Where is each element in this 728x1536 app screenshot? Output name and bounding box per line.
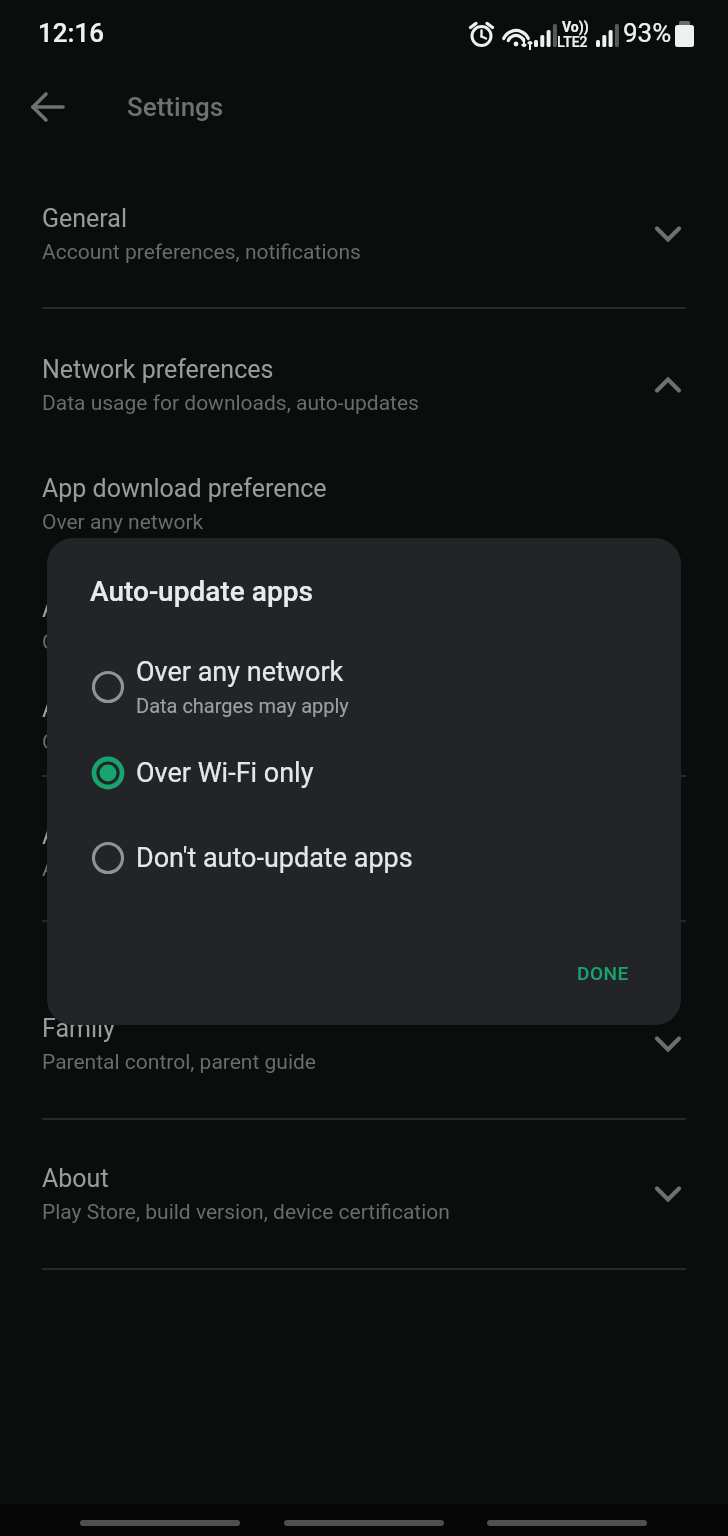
staticText: Over Wi-Fi only	[42, 630, 181, 655]
staticText: Play Store, build version, device certif…	[42, 1200, 450, 1225]
staticText: Over any network	[136, 656, 344, 688]
button[interactable]	[24, 83, 72, 131]
button[interactable]: App install optimization	[0, 795, 728, 895]
staticText: Account preferences, notifications	[42, 240, 361, 265]
button[interactable]: Auto-play videos	[0, 668, 728, 768]
staticText: Parental control, parent guide	[42, 1050, 316, 1075]
staticText: Auto-update apps	[42, 594, 239, 623]
staticText: General	[42, 204, 128, 233]
staticText: 93%	[623, 18, 672, 48]
button[interactable]: Network preferences	[0, 329, 728, 429]
button[interactable]: Auto-update apps	[0, 568, 728, 668]
staticText: Network preferences	[42, 355, 274, 384]
staticText: 12:16	[38, 18, 105, 48]
staticText: Family	[42, 1014, 115, 1043]
staticText: Over any network	[42, 510, 204, 535]
button[interactable]: Don't auto-update apps	[60, 815, 668, 901]
button[interactable]: General	[0, 178, 728, 278]
staticText: Don't auto-update apps	[136, 842, 413, 874]
staticText: App install optimization	[42, 821, 305, 850]
staticText: Allowed	[42, 857, 117, 882]
staticText: About	[42, 1164, 109, 1193]
button[interactable]: Over Wi-Fi only	[60, 730, 668, 816]
staticText: Auto-update apps	[90, 575, 313, 608]
button[interactable]: Over any network	[60, 644, 668, 730]
staticText: Vo))	[562, 19, 589, 35]
staticText: On Wi-Fi only	[42, 730, 164, 755]
staticText: Settings	[127, 92, 224, 122]
staticText: DONE	[577, 962, 629, 984]
staticText: App download preference	[42, 474, 327, 503]
staticText: Over Wi-Fi only	[136, 757, 314, 789]
button[interactable]: App download preference	[0, 448, 728, 548]
staticText: LTE2	[557, 34, 588, 50]
staticText: Data usage for downloads, auto-updates	[42, 391, 419, 416]
staticText: Data charges may apply	[136, 694, 349, 717]
button[interactable]: Family	[0, 988, 728, 1088]
button[interactable]: DONE	[547, 945, 659, 1001]
staticText: Auto-play videos	[42, 694, 226, 723]
button[interactable]: About	[0, 1138, 728, 1238]
